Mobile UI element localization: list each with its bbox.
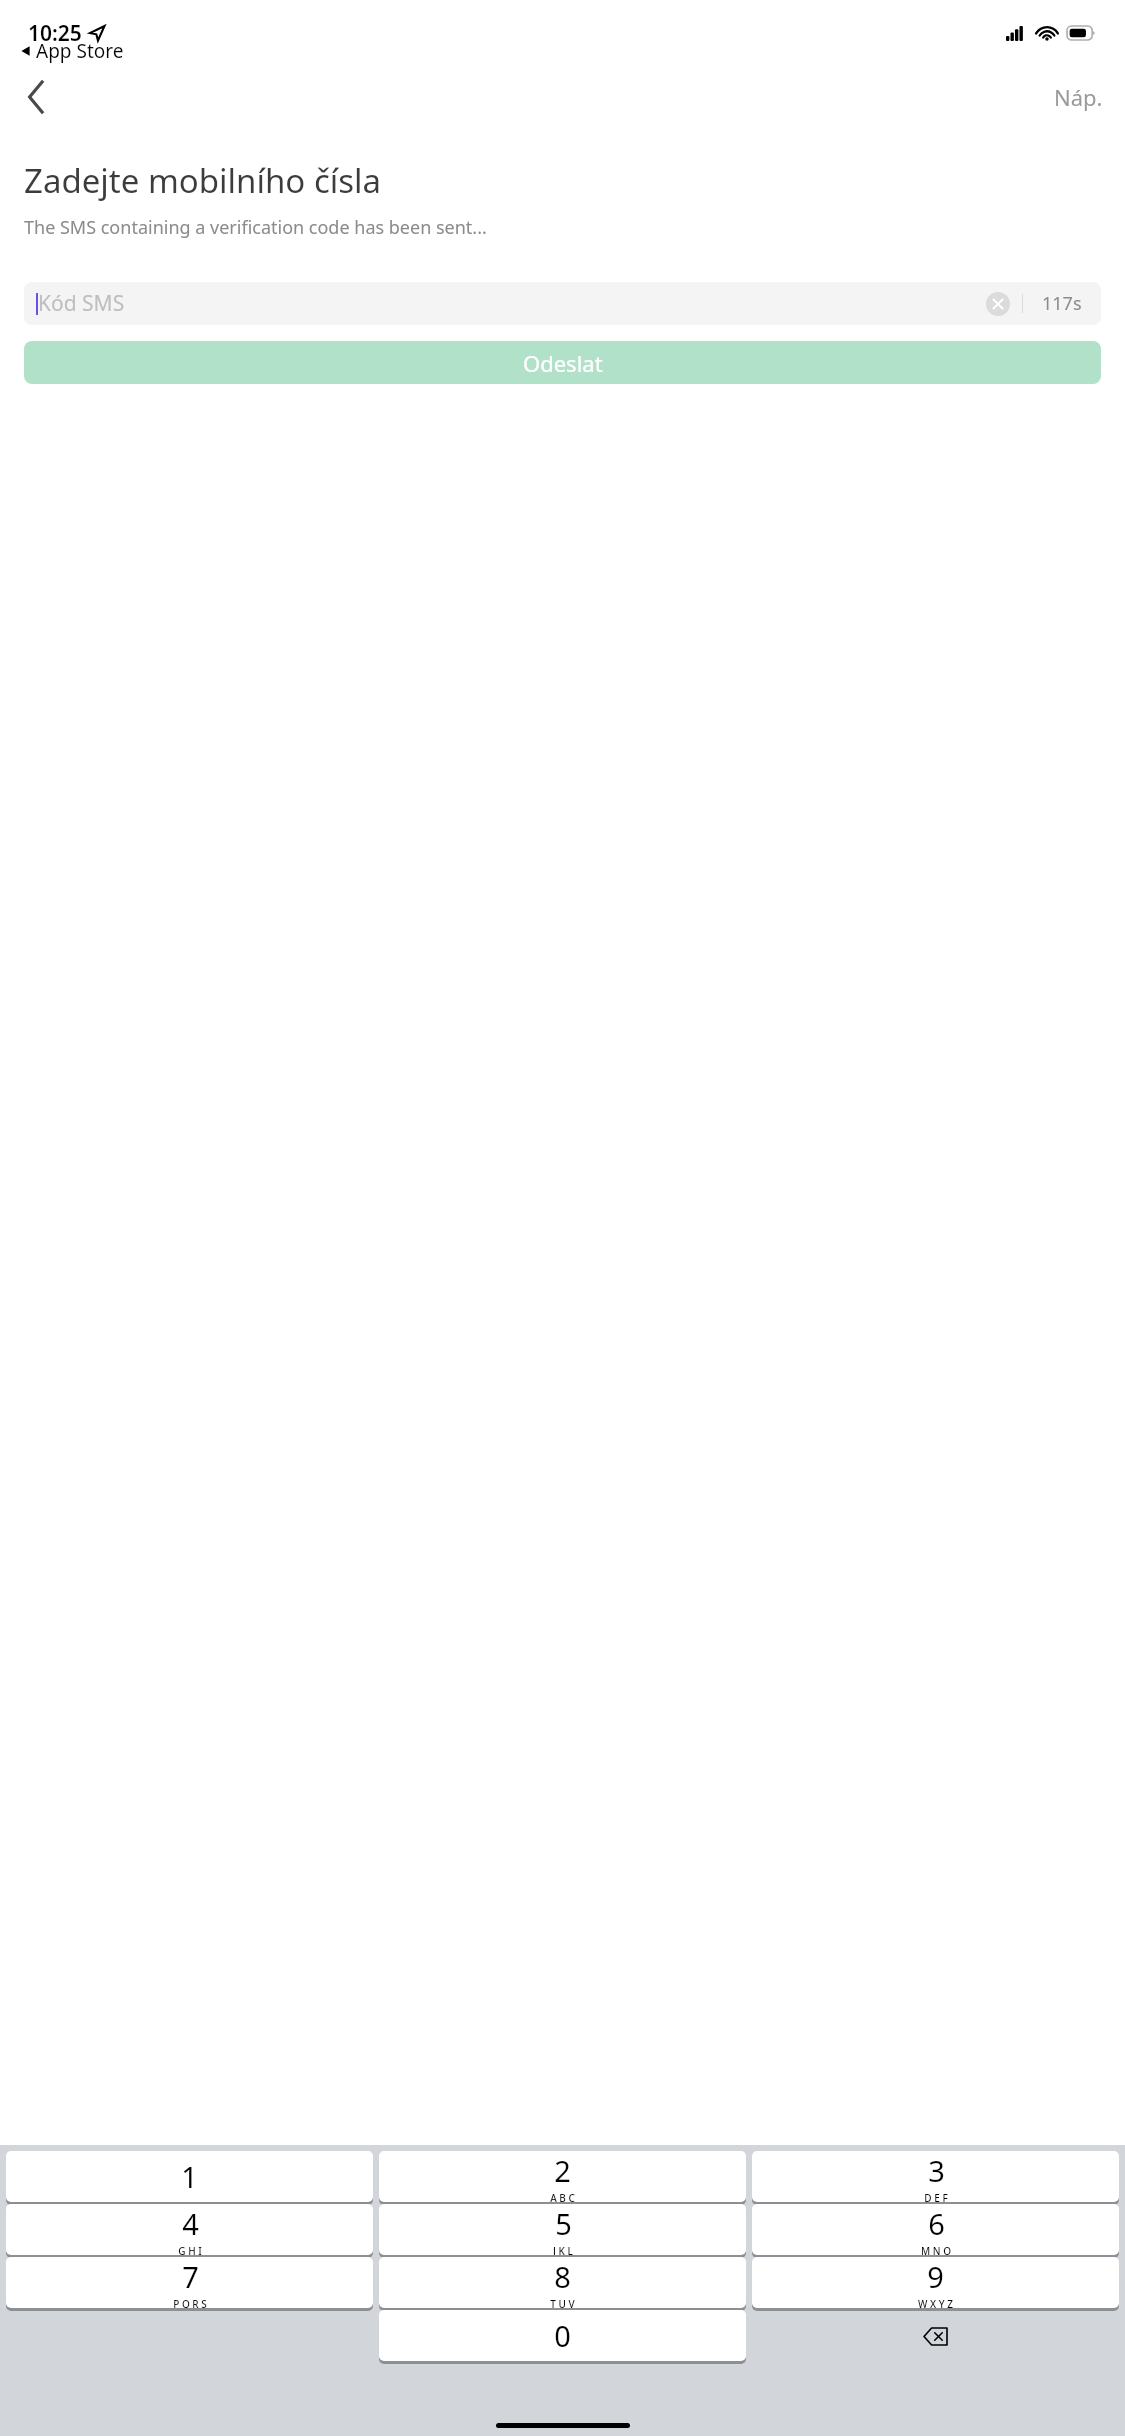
staticText: 2 [554,2151,571,2190]
staticText: 8 [554,2257,571,2296]
staticText: 4 [182,2204,199,2243]
button[interactable]: 2 [379,2151,746,2204]
staticText: 5 [555,2204,572,2243]
staticText: 10:25 [28,19,82,48]
staticText: 117s [1042,291,1082,316]
staticText: The SMS containing a verification code h… [24,215,487,240]
button[interactable]: 6 [752,2204,1119,2257]
button[interactable]: Náp. [1032,72,1125,122]
button[interactable]: 9 [752,2257,1119,2310]
staticText: W X Y Z [918,2297,953,2308]
button[interactable]: 3 [752,2151,1119,2204]
staticText: 0 [554,2316,571,2355]
staticText: G H I [178,2244,202,2255]
button[interactable]: Clear [980,286,1016,322]
staticText: Zadejte mobilního čísla [24,158,382,203]
button[interactable]: 7 [6,2257,373,2310]
staticText: Odeslat [523,348,603,378]
staticText: App Store [36,38,124,64]
staticText: T U V [550,2297,575,2308]
staticText: P Q R S [173,2297,207,2308]
staticText: Náp. [1054,82,1103,112]
button[interactable]: Backspace [752,2310,1119,2363]
staticText: 7 [182,2257,199,2296]
staticText: D E F [924,2191,948,2202]
staticText: 9 [927,2257,944,2296]
button[interactable]: 5 [379,2204,746,2257]
button[interactable]: Kód SMS [24,282,1101,325]
button[interactable]: Back [10,71,62,123]
button[interactable]: 4 [6,2204,373,2257]
staticText: Kód SMS [38,289,125,318]
button[interactable]: Odeslat [24,341,1101,384]
staticText: J K L [553,2244,573,2255]
staticText: 6 [928,2204,945,2243]
staticText: A B C [550,2191,575,2202]
staticText: 3 [928,2151,945,2190]
staticText: 1 [181,2157,198,2196]
staticText: M N O [921,2244,951,2255]
button[interactable]: 0 [379,2310,746,2363]
button[interactable]: 1 [6,2151,373,2204]
button[interactable]: 8 [379,2257,746,2310]
